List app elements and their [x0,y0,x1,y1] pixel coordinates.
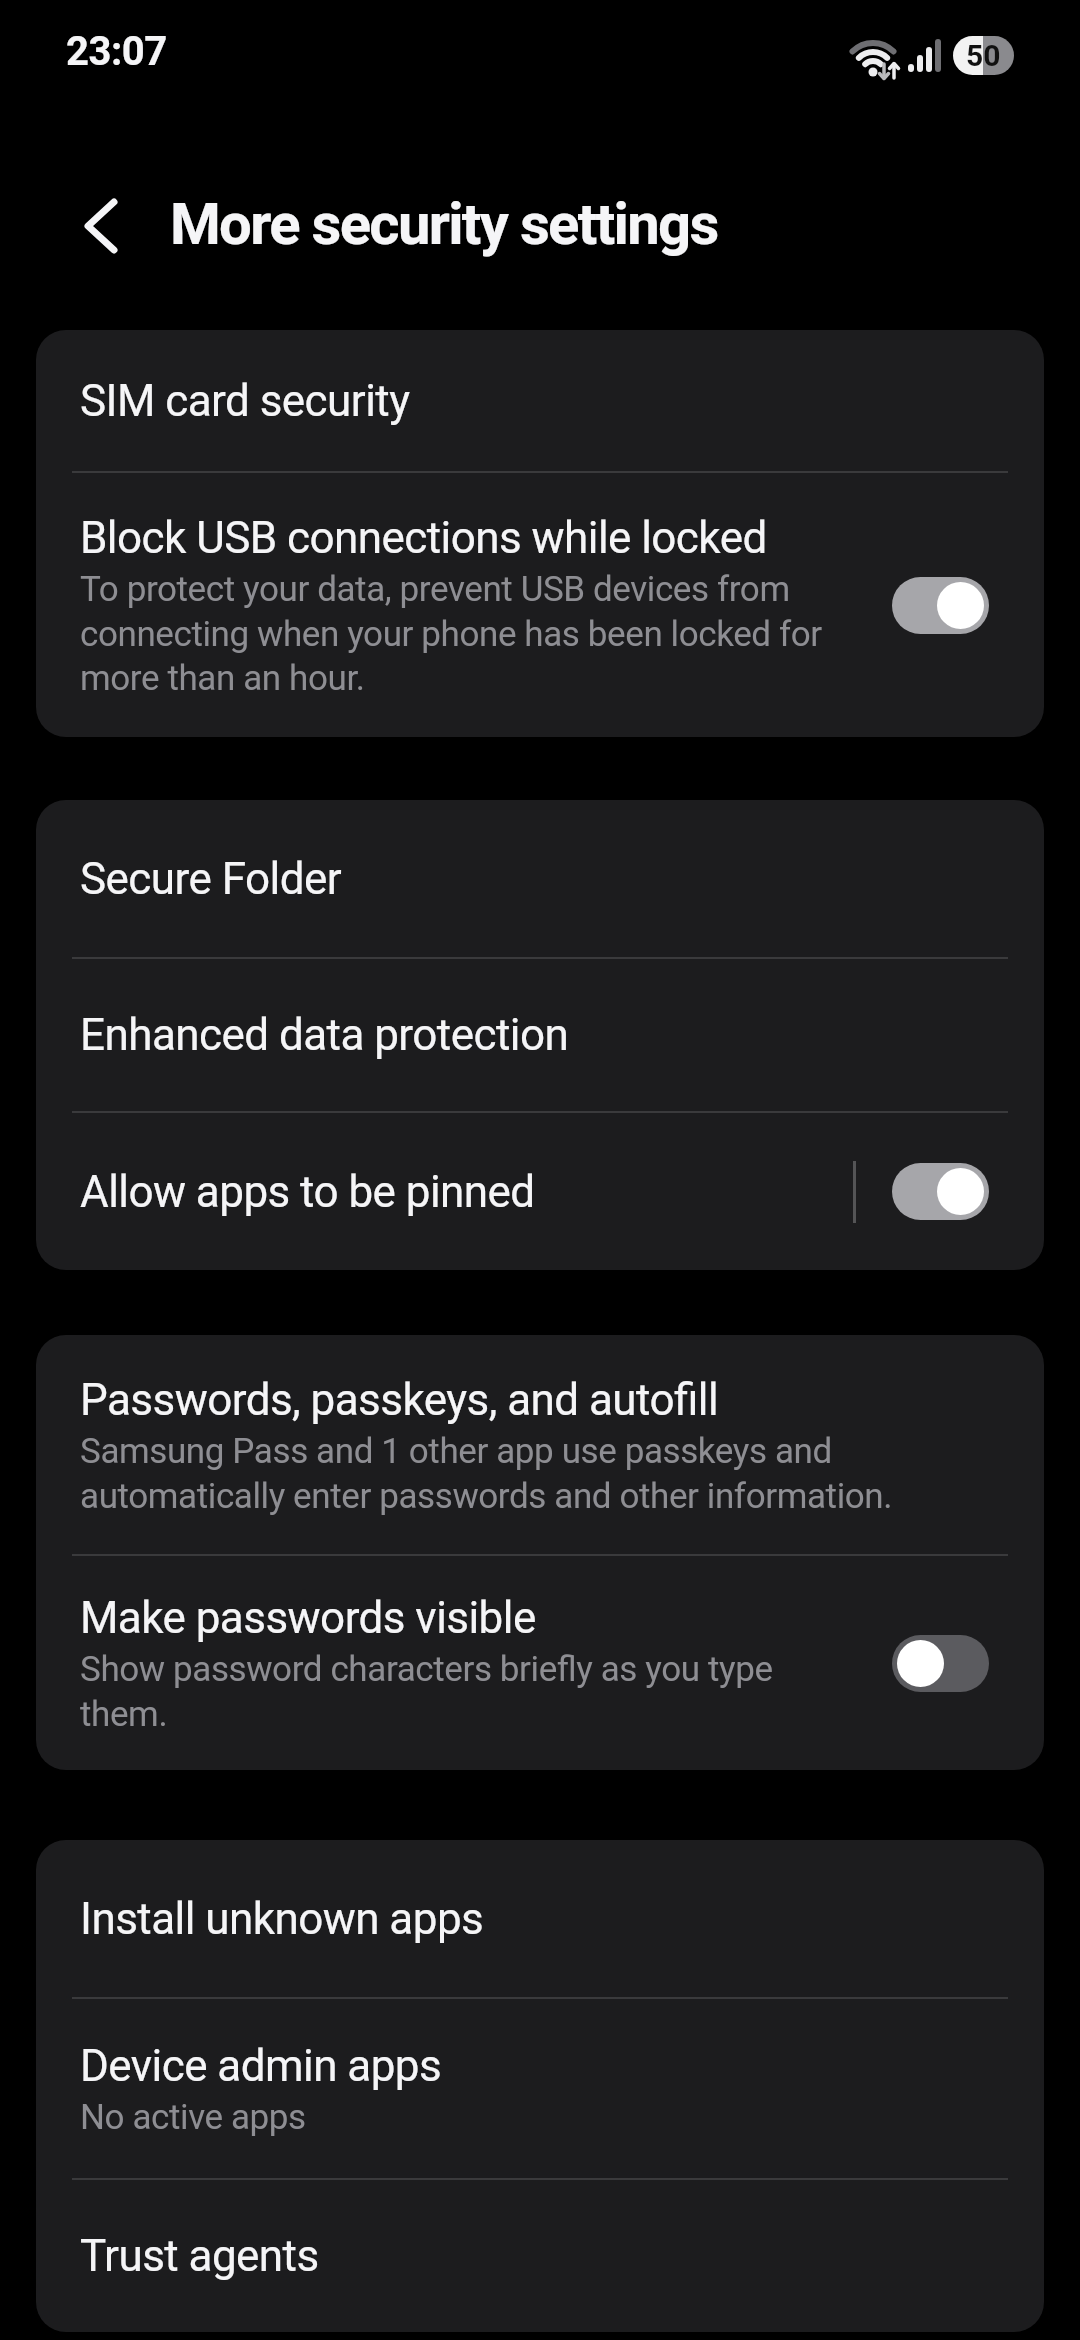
staticText: Enhanced data protection [80,1009,569,1061]
staticText: Device admin apps [80,2040,442,2092]
staticText: Install unknown apps [80,1893,484,1945]
button[interactable]: Secure Folder [36,800,1044,957]
staticText: No active apps [80,2097,306,2138]
staticText: SIM card security [80,375,410,427]
staticText: Passwords, passkeys, and autofill [80,1374,719,1426]
button[interactable]: Passwords, passkeys, and autofill [36,1335,1044,1554]
button[interactable]: Make passwords visible [36,1556,1044,1770]
staticText: Make passwords visible [80,1592,536,1644]
button[interactable]: Trust agents [36,2180,1044,2332]
button[interactable]: Install unknown apps [36,1840,1044,1997]
staticText: More security settings [170,190,718,258]
staticText: To protect your data, prevent USB device… [80,569,822,698]
staticText: Secure Folder [80,853,342,905]
staticText: 23:07 [66,28,167,75]
button[interactable]: SIM card security [36,330,1044,471]
button[interactable] [892,1635,989,1692]
button[interactable]: Enhanced data protection [36,959,1044,1111]
staticText: Samsung Pass and 1 other app use passkey… [80,1431,893,1516]
button[interactable] [84,197,118,255]
button[interactable]: Allow apps to be pinned [36,1113,1044,1270]
staticText: Allow apps to be pinned [80,1166,535,1218]
button[interactable]: Block USB connections while locked [36,473,1044,737]
staticText: Block USB connections while locked [80,512,767,564]
staticText: 50 [966,38,1001,73]
button[interactable] [892,577,989,634]
staticText: Trust agents [80,2230,319,2282]
staticText: Show password characters briefly as you … [80,1649,773,1734]
button[interactable]: Device admin apps [36,1999,1044,2178]
button[interactable] [892,1163,989,1220]
